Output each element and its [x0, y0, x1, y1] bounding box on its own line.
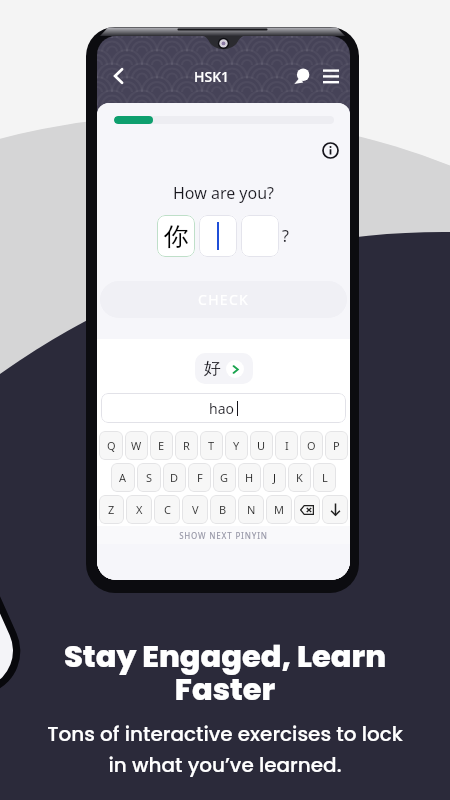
staticText: T	[208, 438, 215, 453]
staticText: O	[307, 438, 316, 453]
button[interactable]: N	[238, 495, 264, 524]
staticText: Stay Engaged, Learn Faster	[0, 635, 450, 711]
staticText: J	[273, 470, 277, 485]
button[interactable]: D	[163, 463, 186, 492]
staticText: 好	[204, 358, 221, 379]
staticText: B	[219, 502, 227, 517]
button[interactable]: Y	[225, 431, 248, 460]
staticText: Tons of interactive exercises to lock in…	[0, 720, 450, 779]
button[interactable]: Backspace	[294, 495, 320, 524]
staticText: E	[158, 438, 165, 453]
staticText: Q	[107, 438, 116, 453]
staticText: Z	[108, 502, 115, 517]
button[interactable]: K	[288, 463, 311, 492]
staticText: 你	[164, 221, 189, 252]
button[interactable]: O	[300, 431, 323, 460]
staticText: X	[136, 502, 143, 517]
button[interactable]: Chat	[289, 63, 315, 89]
button[interactable]: 好	[204, 353, 244, 384]
staticText: L	[322, 470, 328, 485]
staticText: U	[257, 438, 266, 453]
button[interactable]: T	[200, 431, 223, 460]
staticText: I	[285, 438, 289, 453]
button[interactable]: H	[238, 463, 261, 492]
button[interactable]: Hide keyboard	[322, 495, 348, 524]
button[interactable]: P	[325, 431, 348, 460]
button[interactable]: B	[210, 495, 236, 524]
button[interactable]: Back	[103, 60, 135, 92]
staticText: F	[197, 470, 203, 485]
button[interactable]	[199, 215, 237, 257]
button[interactable]: W	[125, 431, 148, 460]
staticText: V	[192, 502, 199, 517]
staticText: Y	[233, 438, 240, 453]
button[interactable]: M	[266, 495, 292, 524]
staticText: How are you?	[97, 182, 350, 204]
staticText: H	[245, 470, 254, 485]
button[interactable]: Menu	[318, 63, 344, 89]
staticText: HSK1	[194, 67, 230, 86]
button[interactable]: Q	[99, 431, 123, 460]
staticText: P	[333, 438, 340, 453]
staticText: M	[274, 502, 284, 517]
button[interactable]: E	[150, 431, 173, 460]
staticText: A	[119, 470, 127, 485]
button[interactable]: Z	[99, 495, 124, 524]
button[interactable]: SHOW NEXT PINYIN	[97, 526, 350, 544]
button[interactable]: Info	[320, 140, 340, 160]
button[interactable]: L	[313, 463, 336, 492]
staticText: G	[220, 470, 229, 485]
button[interactable]: J	[263, 463, 286, 492]
staticText: S	[146, 470, 153, 485]
staticText: W	[131, 438, 142, 453]
button[interactable]: G	[213, 463, 236, 492]
button[interactable]: X	[126, 495, 152, 524]
button[interactable]: 你	[157, 215, 195, 257]
button[interactable]: S	[137, 463, 161, 492]
staticText: K	[296, 470, 303, 485]
staticText: N	[247, 502, 256, 517]
staticText: SHOW NEXT PINYIN	[179, 530, 268, 541]
staticText: CHECK	[198, 290, 250, 309]
button[interactable]: A	[111, 463, 135, 492]
staticText: R	[183, 438, 190, 453]
button[interactable]: F	[188, 463, 211, 492]
staticText: C	[164, 502, 171, 517]
button[interactable]	[241, 215, 279, 257]
staticText: D	[170, 470, 179, 485]
staticText: ?	[282, 225, 289, 247]
button[interactable]: V	[182, 495, 208, 524]
button[interactable]: R	[175, 431, 198, 460]
staticText: hao	[209, 399, 234, 418]
button[interactable]: C	[154, 495, 180, 524]
button[interactable]: U	[250, 431, 273, 460]
button[interactable]: I	[275, 431, 298, 460]
